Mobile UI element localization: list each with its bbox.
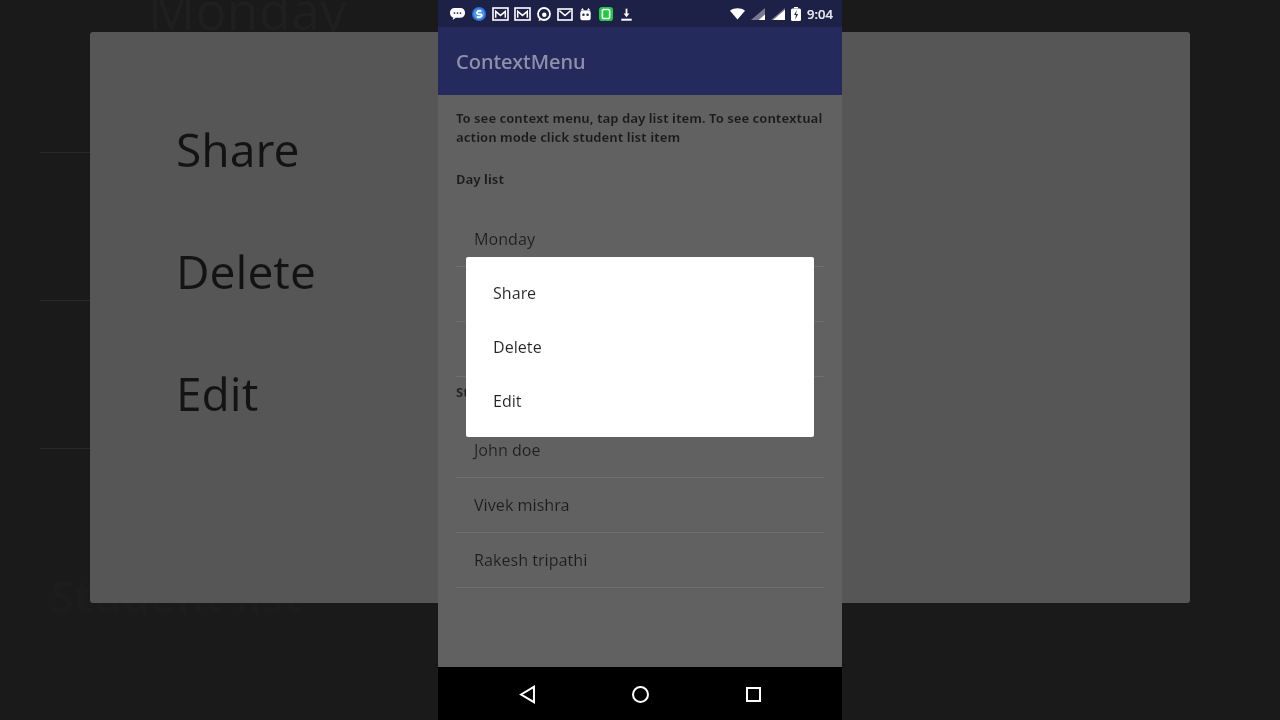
staticText: Rakesh tripathi [474, 549, 588, 571]
staticText: Delete [176, 240, 316, 300]
staticText: Monday [148, 0, 347, 34]
staticText: John doe [474, 439, 541, 461]
staticText: Vivek mishra [474, 494, 570, 516]
button[interactable]: Delete [466, 320, 814, 374]
button[interactable]: Wednesday [438, 322, 842, 377]
button[interactable]: Rakesh tripathi [438, 533, 842, 588]
staticText: Student list [456, 383, 531, 401]
staticText: Day list [456, 170, 505, 188]
button[interactable]: Vivek mishra [438, 478, 842, 533]
staticText: To see context menu, tap day list item. … [456, 109, 824, 146]
staticText: Wednesday [474, 338, 561, 360]
button[interactable]: Home [616, 670, 664, 718]
button[interactable]: Share [466, 266, 814, 320]
staticText: 9:04 [807, 5, 833, 23]
staticText: Student list [50, 566, 303, 626]
button[interactable]: Recent apps [729, 670, 777, 718]
button[interactable]: Tuesday [438, 267, 842, 322]
button[interactable]: John doe [438, 423, 842, 478]
staticText: Share [176, 118, 300, 178]
staticText: Edit [176, 362, 259, 422]
staticText: Monday [474, 228, 536, 250]
staticText: Delete [493, 336, 542, 358]
button[interactable]: Edit [466, 374, 814, 428]
staticText: Edit [493, 390, 522, 412]
button[interactable]: Monday [438, 212, 842, 267]
staticText: Share [493, 282, 536, 304]
staticText: ContextMenu [456, 48, 586, 75]
button[interactable]: Back [503, 670, 551, 718]
staticText: Tuesday [474, 283, 536, 305]
